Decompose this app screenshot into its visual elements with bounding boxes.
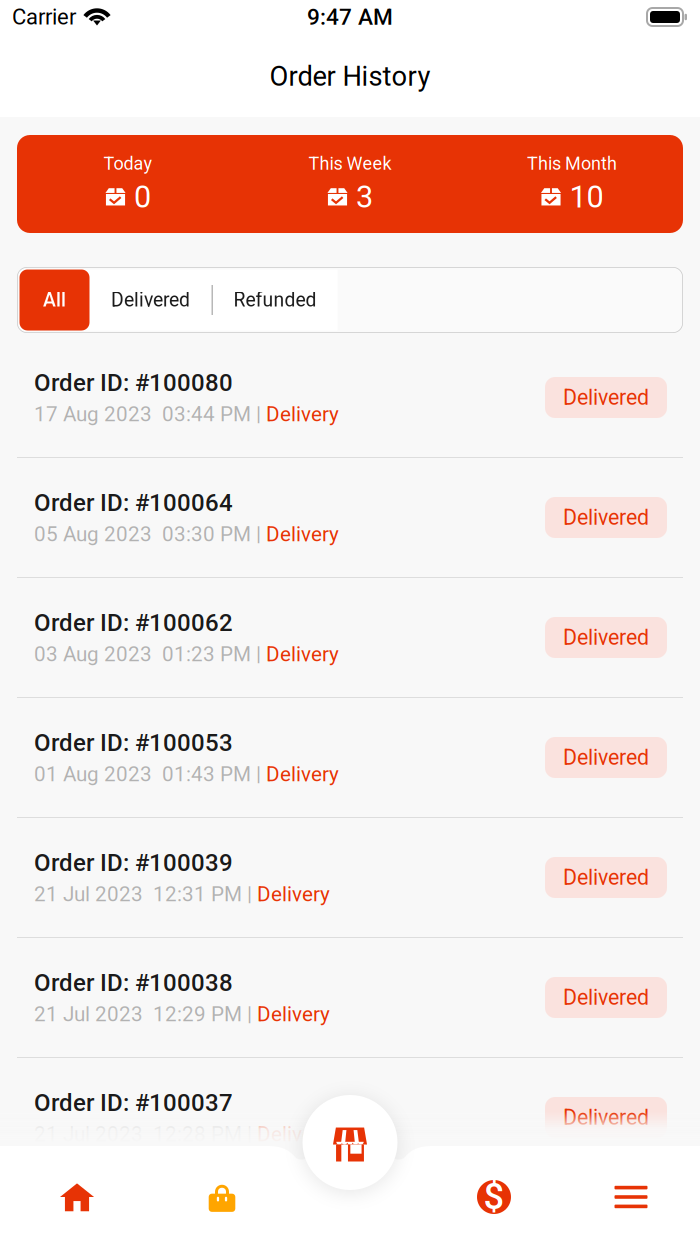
staticText: Order ID: #100080 [34, 369, 233, 397]
button[interactable]: Order ID: #100039 [0, 818, 700, 938]
button[interactable]: Menu [562, 1148, 700, 1244]
staticText: 0 [134, 179, 151, 215]
staticText: This Week [308, 153, 391, 174]
staticText: Order ID: #100064 [34, 489, 233, 517]
staticText: 05 Aug 2023 03:30 PM [34, 522, 256, 546]
staticText: Order ID: #100053 [34, 729, 233, 757]
staticText: Delivery [266, 402, 339, 426]
button[interactable]: Order ID: #100038 [0, 938, 700, 1058]
staticText: $ [483, 1175, 504, 1218]
staticText: Delivered [563, 385, 649, 410]
button[interactable]: Order ID: #100080 [0, 338, 700, 458]
button[interactable]: Order ID: #100053 [0, 698, 700, 818]
staticText: | [256, 642, 266, 666]
staticText: This Month [527, 153, 617, 174]
staticText: Delivery [257, 1122, 330, 1146]
staticText: Order ID: #100062 [34, 609, 233, 637]
staticText: Delivery [257, 1002, 330, 1026]
button[interactable]: Order ID: #100064 [0, 458, 700, 578]
staticText: Delivered [111, 289, 190, 311]
staticText: | [247, 1002, 257, 1026]
button[interactable]: Delivered [89, 269, 211, 330]
staticText: Delivery [266, 642, 339, 666]
button[interactable]: Payments [426, 1148, 562, 1244]
staticText: 10 [569, 179, 603, 215]
staticText: Delivery [266, 762, 339, 786]
button[interactable]: Store [302, 1095, 397, 1190]
staticText: Order ID: #100039 [34, 849, 233, 877]
staticText: 21 Jul 2023 12:31 PM [34, 882, 247, 906]
button[interactable]: Home [0, 1148, 154, 1244]
staticText: 17 Aug 2023 03:44 PM [34, 402, 256, 426]
staticText: Delivered [563, 1105, 649, 1130]
staticText: Delivery [266, 522, 339, 546]
staticText: 3 [356, 179, 373, 215]
staticText: All [43, 289, 66, 311]
staticText: Order ID: #100038 [34, 969, 233, 997]
staticText: Refunded [233, 289, 316, 311]
staticText: | [256, 762, 266, 786]
staticText: 03 Aug 2023 01:23 PM [34, 642, 256, 666]
staticText: Delivered [563, 745, 649, 770]
button[interactable]: Order ID: #100062 [0, 578, 700, 698]
staticText: | [256, 522, 266, 546]
staticText: Today [103, 153, 152, 174]
button[interactable]: All [19, 269, 89, 330]
staticText: Delivered [563, 505, 649, 530]
staticText: Delivered [563, 985, 649, 1010]
staticText: 9:47 AM [307, 4, 393, 30]
staticText: Delivered [563, 865, 649, 890]
staticText: Delivered [563, 625, 649, 650]
button[interactable]: Order ID: #100037 [0, 1058, 700, 1178]
staticText: Delivery [257, 882, 330, 906]
staticText: 21 Jul 2023 12:29 PM [34, 1002, 247, 1026]
staticText: 01 Aug 2023 01:43 PM [34, 762, 256, 786]
staticText: | [256, 402, 266, 426]
button[interactable]: Shop [154, 1148, 290, 1244]
staticText: | [247, 882, 257, 906]
staticText: Order ID: #100037 [34, 1089, 233, 1117]
staticText: Carrier [12, 4, 76, 30]
button[interactable]: Refunded [213, 269, 337, 330]
staticText: Order History [269, 60, 430, 92]
